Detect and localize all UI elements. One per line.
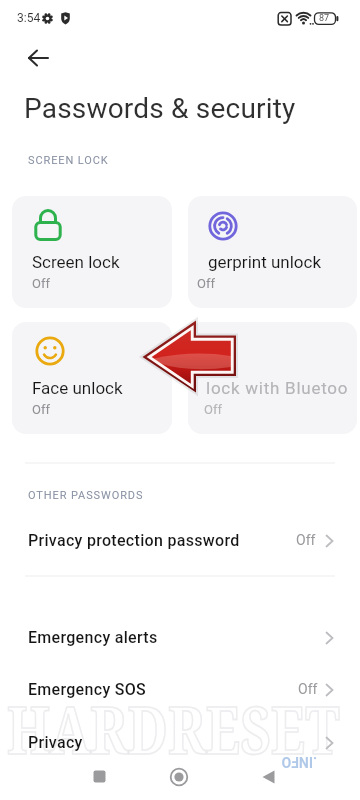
staticText: HARDRESET [7,683,295,773]
button[interactable] [0,516,360,566]
button[interactable] [0,665,360,715]
button[interactable] [188,322,357,434]
staticText: Emergency SOS [28,680,147,699]
staticText: Privacy protection password [28,531,240,550]
staticText: Off [32,276,50,291]
button[interactable] [240,755,288,800]
staticText: Off [204,402,222,417]
button[interactable] [18,44,58,74]
button[interactable] [0,613,360,663]
button[interactable] [75,755,123,800]
staticText: Privacy [28,733,83,752]
staticText: .INFO [281,754,317,770]
button[interactable] [12,322,172,434]
button[interactable] [188,196,357,308]
staticText: Face unlock [32,378,123,398]
staticText: Off [296,532,316,548]
staticText: 3:54 [17,11,41,25]
staticText: HARDRESET [7,683,295,773]
staticText: Off [197,276,215,291]
staticText: 87 [319,13,330,24]
button[interactable] [155,755,203,800]
staticText: lock with Bluetoo [206,378,349,398]
staticText: gerprint unlock [208,252,322,272]
staticText: SCREEN LOCK [28,154,109,167]
button[interactable] [0,718,360,768]
staticText: Passwords & security [24,92,296,125]
staticText: Screen lock [32,252,120,272]
staticText: OTHER PASSWORDS [28,489,144,502]
staticText: Off [32,402,50,417]
staticText: Off [298,681,318,697]
button[interactable] [12,196,172,308]
staticText: Emergency alerts [28,628,158,647]
